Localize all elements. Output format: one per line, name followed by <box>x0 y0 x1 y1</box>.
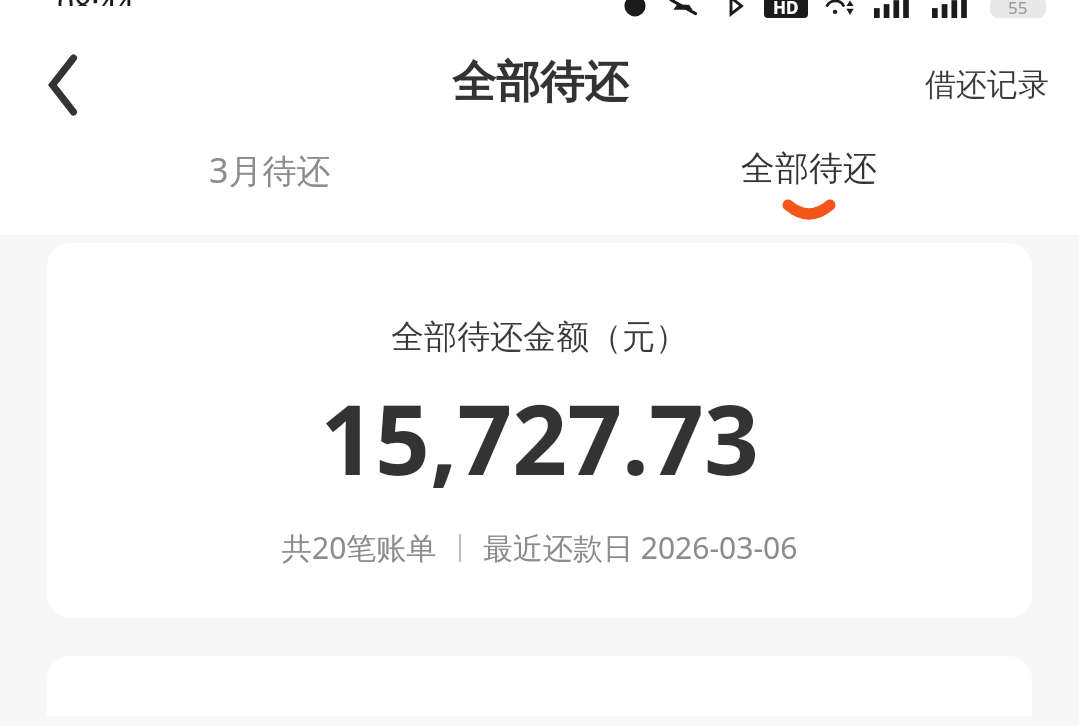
staticText: 3月待还 <box>209 147 331 193</box>
button[interactable]: Back <box>22 43 106 127</box>
staticText: 15,727.73 <box>320 372 759 503</box>
staticText: 08:44 <box>57 0 134 6</box>
button[interactable]: 3月待还 <box>0 147 539 235</box>
staticText: 55 <box>1008 0 1028 18</box>
staticText: HD <box>773 0 799 18</box>
staticText: 共20笔账单 <box>282 527 437 568</box>
button[interactable]: 全部待还金额（元） <box>47 243 1032 618</box>
staticText: 全部待还 <box>452 55 628 110</box>
staticText: 最近还款日 2026-03-06 <box>483 527 798 568</box>
staticText: 借还记录 <box>925 65 1049 104</box>
staticText: 全部待还金额（元） <box>391 316 688 358</box>
button[interactable]: 全部待还 <box>539 147 1079 235</box>
button[interactable]: 借还记录 <box>917 49 1057 120</box>
staticText: 全部待还 <box>741 147 877 190</box>
